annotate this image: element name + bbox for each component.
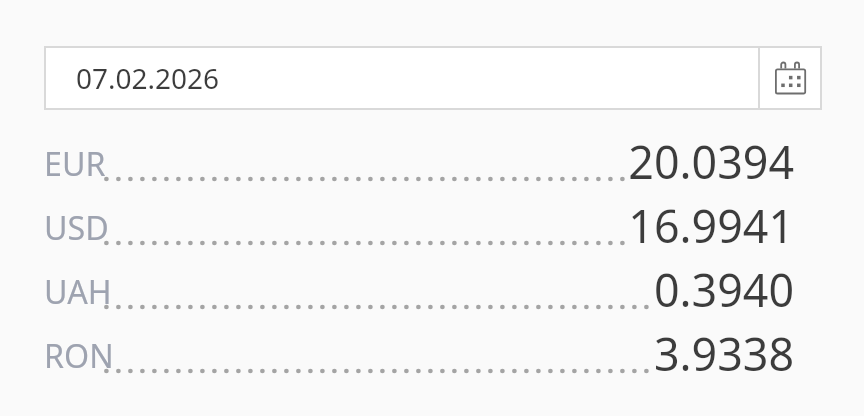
button[interactable]: UAH bbox=[0, 259, 864, 323]
staticText: 3.9338 bbox=[494, 323, 794, 384]
staticText: UAH bbox=[44, 270, 112, 314]
staticText: 07.02.2026 bbox=[76, 59, 220, 97]
staticText: 0.3940 bbox=[494, 259, 794, 320]
staticText: EUR bbox=[44, 142, 106, 186]
button[interactable]: EUR bbox=[0, 131, 864, 195]
staticText: USD bbox=[44, 206, 109, 250]
button[interactable]: RON bbox=[0, 323, 864, 387]
button[interactable]: Pick date bbox=[760, 48, 820, 108]
button[interactable]: 07.02.2026 bbox=[46, 48, 758, 108]
staticText: 20.0394 bbox=[494, 131, 794, 192]
staticText: 16.9941 bbox=[494, 195, 794, 256]
staticText: RON bbox=[44, 334, 114, 378]
button[interactable]: USD bbox=[0, 195, 864, 259]
